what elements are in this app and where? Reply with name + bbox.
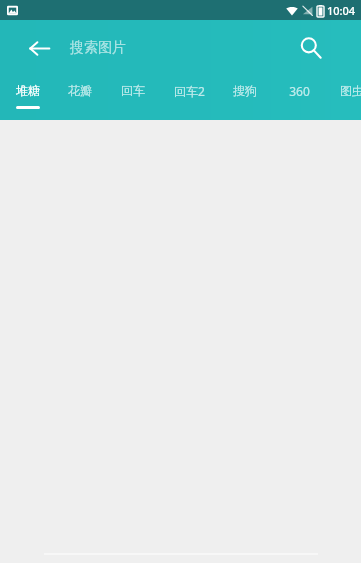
staticText: 搜索图片 [70, 39, 126, 57]
staticText: 图虫 [340, 83, 361, 98]
button[interactable]: 搜索图片 [70, 28, 303, 68]
button[interactable]: 回车 [104, 75, 162, 120]
staticText: 搜狗 [233, 83, 257, 98]
button[interactable]: 回车2 [162, 75, 216, 120]
button[interactable]: 360 [274, 75, 324, 120]
staticText: 花瓣 [68, 83, 92, 98]
staticText: 堆糖 [16, 83, 40, 98]
button[interactable]: Search [291, 28, 331, 68]
button[interactable]: 图虫 [324, 75, 361, 120]
staticText: 10:04 [327, 3, 356, 18]
staticText: 回车2 [174, 83, 205, 99]
button[interactable]: 搜狗 [216, 75, 274, 120]
staticText: 回车 [121, 83, 145, 98]
staticText: 360 [289, 83, 310, 99]
button[interactable]: 花瓣 [56, 75, 104, 120]
button[interactable]: Back [19, 28, 59, 68]
button[interactable]: 堆糖 [0, 75, 56, 120]
